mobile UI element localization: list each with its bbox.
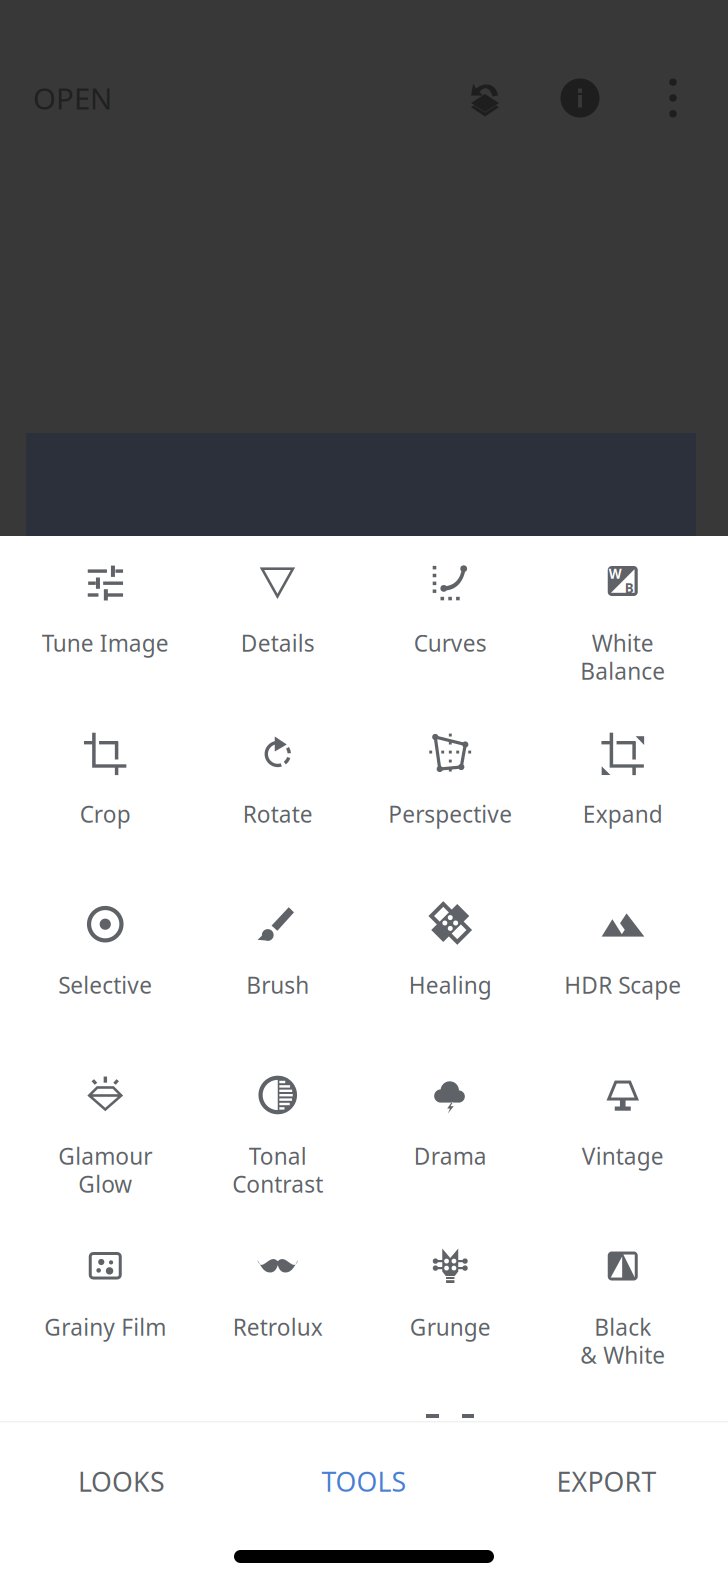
staticText: Selective — [58, 970, 152, 1000]
button[interactable]: Drama — [364, 1049, 536, 1220]
staticText: Rotate — [243, 799, 313, 829]
staticText: Balance — [580, 656, 665, 686]
button[interactable]: Curves — [364, 536, 536, 707]
button[interactable]: Tune Image — [19, 536, 191, 707]
button[interactable]: Glamour — [19, 1049, 191, 1220]
staticText: Tonal — [249, 1141, 307, 1171]
staticText: Grunge — [410, 1312, 491, 1342]
button[interactable]: Expand — [536, 707, 709, 878]
button[interactable]: HDR Scape — [536, 878, 709, 1049]
button[interactable]: Rotate — [191, 707, 364, 878]
button[interactable]: Grunge — [364, 1220, 536, 1391]
button[interactable]: Retrolux — [191, 1220, 364, 1391]
button[interactable]: TOOLS — [243, 1433, 485, 1529]
staticText: Tune Image — [42, 628, 169, 658]
staticText: Healing — [409, 970, 492, 1000]
button[interactable]: Details — [191, 536, 364, 707]
staticText: TOOLS — [321, 1464, 406, 1499]
button[interactable]: Image info — [552, 70, 608, 126]
staticText: White — [592, 628, 654, 658]
button[interactable]: Perspective — [364, 707, 536, 878]
button[interactable]: W — [536, 536, 709, 707]
button[interactable]: Brush — [191, 878, 364, 1049]
staticText: Glamour — [58, 1141, 152, 1171]
button[interactable]: More options — [645, 70, 701, 126]
staticText: Perspective — [388, 799, 512, 829]
staticText: W — [609, 565, 622, 582]
button[interactable]: Black — [536, 1220, 709, 1391]
staticText: Retrolux — [233, 1312, 323, 1342]
staticText: Crop — [80, 799, 131, 829]
button[interactable]: Tonal — [191, 1049, 364, 1220]
button[interactable]: Selective — [19, 878, 191, 1049]
staticText: EXPORT — [557, 1464, 657, 1499]
button[interactable]: Crop — [19, 707, 191, 878]
staticText: Glow — [78, 1169, 132, 1199]
staticText: Curves — [414, 628, 487, 658]
staticText: B — [625, 579, 634, 597]
staticText: Black — [594, 1312, 651, 1342]
staticText: Details — [241, 628, 315, 658]
staticText: Drama — [414, 1141, 487, 1171]
button[interactable]: OPEN — [0, 75, 126, 121]
button[interactable]: LOOKS — [0, 1433, 243, 1529]
staticText: & White — [580, 1340, 665, 1370]
staticText: Contrast — [232, 1169, 323, 1199]
staticText: Grainy Film — [44, 1312, 166, 1342]
button[interactable]: Healing — [364, 878, 536, 1049]
button[interactable]: Undo — [457, 70, 513, 126]
button[interactable]: Vintage — [536, 1049, 709, 1220]
staticText: HDR Scape — [564, 970, 681, 1000]
staticText: Vintage — [582, 1141, 664, 1171]
button[interactable]: Grainy Film — [19, 1220, 191, 1391]
button[interactable]: EXPORT — [485, 1433, 728, 1529]
staticText: LOOKS — [78, 1464, 165, 1499]
staticText: OPEN — [33, 78, 112, 117]
staticText: Expand — [583, 799, 663, 829]
staticText: Brush — [246, 970, 309, 1000]
